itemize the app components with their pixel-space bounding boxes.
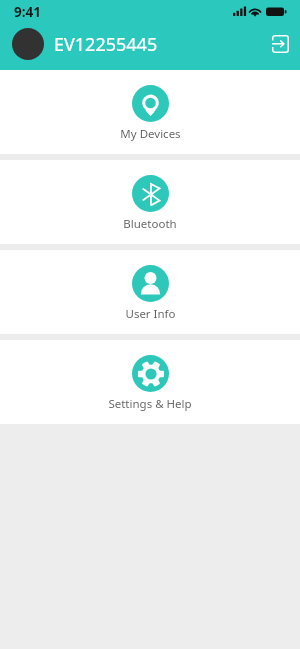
staticText: 9:41 bbox=[14, 3, 41, 21]
staticText: User Info bbox=[125, 306, 176, 322]
button[interactable]: User Info bbox=[0, 250, 300, 334]
button[interactable]: Bluetooth bbox=[0, 160, 300, 244]
staticText: EV12255445 bbox=[54, 32, 158, 57]
button[interactable]: Log out bbox=[256, 22, 300, 66]
staticText: Bluetooth bbox=[123, 216, 177, 232]
button[interactable]: My Devices bbox=[0, 70, 300, 154]
staticText: Settings & Help bbox=[108, 396, 192, 412]
staticText: My Devices bbox=[120, 126, 181, 142]
button[interactable]: Settings & Help bbox=[0, 340, 300, 424]
